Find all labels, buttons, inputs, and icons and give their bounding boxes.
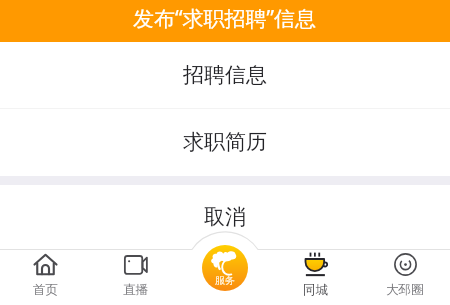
button[interactable]: 首页 (0, 249, 90, 305)
staticText: 首页 (33, 282, 58, 298)
button[interactable]: 大邳圈 (360, 249, 450, 305)
button[interactable]: 求职简历 (0, 109, 450, 176)
staticText: 直播 (123, 282, 148, 298)
staticText: 服务 (215, 274, 235, 287)
button[interactable]: 直播 (90, 249, 180, 305)
staticText: 发布“求职招聘”信息 (133, 4, 317, 33)
staticText: 求职简历 (183, 129, 267, 155)
staticText: 大邳圈 (386, 282, 424, 298)
button[interactable]: 服务 (202, 245, 248, 291)
button[interactable]: 同城 (270, 249, 360, 305)
staticText: 同城 (303, 282, 328, 298)
button[interactable]: 取消 (0, 185, 450, 250)
button[interactable]: 招聘信息 (0, 42, 450, 108)
staticText: 招聘信息 (183, 62, 267, 88)
staticText: 取消 (204, 204, 246, 230)
